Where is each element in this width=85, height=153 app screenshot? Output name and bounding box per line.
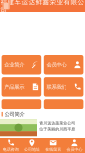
button[interactable]: 青川远达蔬菜业公司 bbox=[0, 119, 85, 136]
staticText: 公司地址 bbox=[24, 147, 40, 152]
staticText: 产品展示 bbox=[4, 84, 24, 90]
staticText: 联系我们 bbox=[46, 84, 66, 90]
button[interactable]: 产品展示 bbox=[2, 77, 41, 97]
button[interactable]: Menu bbox=[1, 0, 11, 12]
staticText: 电话咨询 bbox=[3, 147, 19, 152]
button[interactable]: More bbox=[44, 99, 83, 109]
button[interactable]: 会员中心 bbox=[64, 138, 85, 153]
staticText: 在线留言 bbox=[45, 147, 61, 152]
button[interactable]: 会员中心 bbox=[44, 55, 83, 74]
staticText: 福建车运达鲜鑫荣业有限公司 bbox=[0, 0, 84, 14]
staticText: 会员中心 bbox=[46, 61, 66, 68]
staticText: 位于美丽的川西平原 bbox=[39, 127, 75, 132]
button[interactable]: 电话咨询 bbox=[0, 138, 21, 153]
button[interactable]: 联系我们 bbox=[44, 77, 83, 97]
staticText: 青川远达蔬菜业公司 bbox=[39, 121, 75, 126]
button[interactable]: 在线留言 bbox=[42, 138, 64, 153]
staticText: 会员中心 bbox=[66, 147, 82, 152]
staticText: 企业简介 bbox=[4, 61, 24, 68]
button[interactable]: 公司地址 bbox=[21, 138, 42, 153]
staticText: 公司简介 bbox=[5, 111, 25, 117]
button[interactable]: 企业简介 bbox=[2, 55, 41, 74]
button[interactable]: More bbox=[2, 99, 41, 109]
